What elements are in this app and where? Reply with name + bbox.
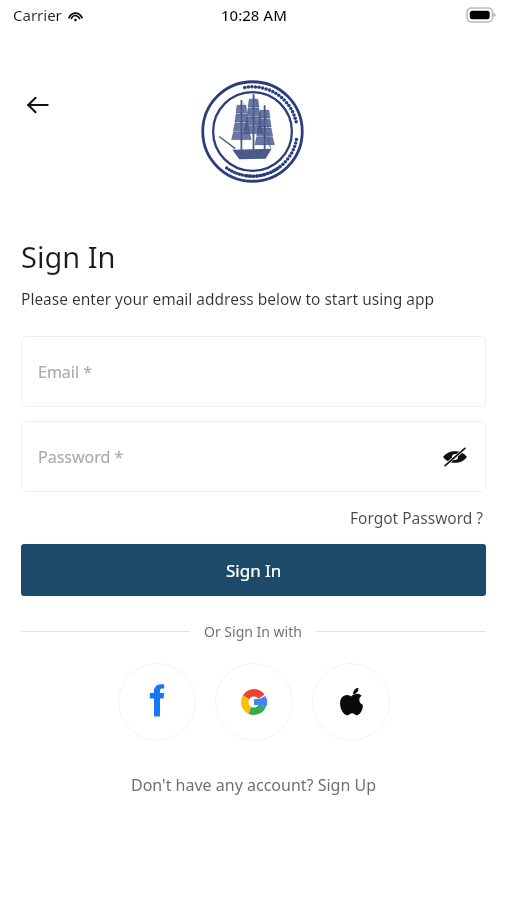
button[interactable]: Sign In	[21, 544, 486, 596]
button[interactable]: Sign in with Apple	[312, 663, 390, 741]
button[interactable]: Password *	[21, 421, 486, 492]
button[interactable]: Don't have any account? Sign Up	[127, 770, 380, 800]
button[interactable]: Show password	[440, 442, 470, 472]
staticText: Sign In	[21, 237, 116, 276]
staticText: Or Sign In with	[204, 622, 302, 641]
button[interactable]: Email *	[21, 336, 486, 407]
staticText: Sign In	[226, 559, 282, 582]
staticText: Password *	[38, 446, 124, 468]
staticText: Forgot Password ?	[350, 507, 484, 528]
staticText: Carrier	[13, 5, 62, 25]
staticText: Email *	[38, 361, 93, 383]
button[interactable]: Back	[21, 88, 55, 122]
button[interactable]: Sign in with Facebook	[118, 663, 196, 741]
staticText: Don't have any account? Sign Up	[131, 774, 376, 796]
staticText: 10:28 AM	[221, 5, 287, 25]
button[interactable]: Forgot Password ?	[348, 505, 486, 530]
button[interactable]: Sign in with Google	[215, 663, 293, 741]
staticText: Please enter your email address below to…	[21, 288, 435, 309]
